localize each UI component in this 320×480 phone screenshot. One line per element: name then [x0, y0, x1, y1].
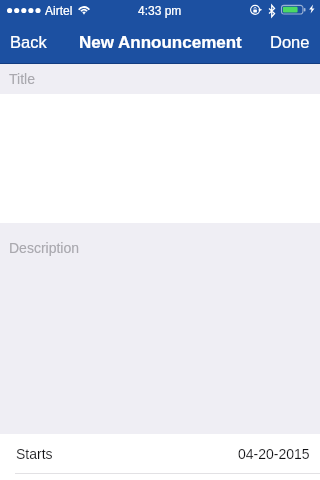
staticText: 4:33 pm — [138, 4, 182, 17]
staticText: Done — [270, 33, 310, 51]
staticText: Back — [10, 33, 47, 51]
button[interactable]: Description — [0, 223, 320, 434]
staticText: Starts — [16, 446, 53, 462]
staticText: Airtel — [45, 4, 73, 17]
other: Rotation lock — [250, 4, 263, 16]
staticText: 04-20-2015 — [238, 446, 310, 462]
button[interactable]: Starts — [0, 434, 320, 473]
button[interactable]: Title — [0, 64, 320, 94]
button[interactable]: Back — [0, 22, 59, 62]
staticText: New Announcement — [79, 33, 242, 52]
staticText: Title — [9, 71, 35, 87]
button[interactable]: Done — [258, 22, 320, 62]
staticText: Description — [9, 240, 80, 256]
